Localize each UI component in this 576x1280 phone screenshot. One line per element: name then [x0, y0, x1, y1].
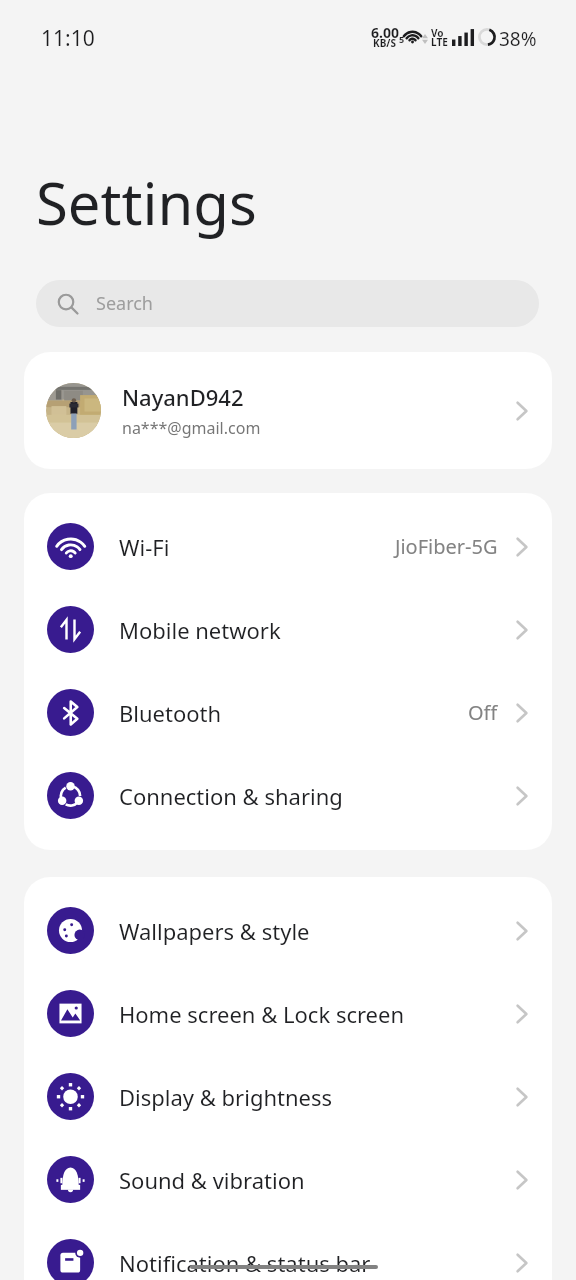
button[interactable]: Home screen & Lock screen [24, 972, 552, 1055]
staticText: KB/S [373, 36, 396, 50]
staticText: Settings [36, 163, 257, 242]
button[interactable]: NayanD942 account [24, 352, 552, 469]
staticText: Connection & sharing [119, 781, 343, 811]
staticText: Wallpapers & style [119, 916, 310, 946]
button[interactable]: Sound & vibration [24, 1138, 552, 1221]
staticText: 38% [499, 26, 537, 52]
staticText: 5 [399, 33, 405, 45]
staticText: LTE [431, 35, 448, 49]
button[interactable]: Search settings [36, 280, 539, 327]
button[interactable]: Wi-Fi [24, 505, 552, 588]
button[interactable]: Display & brightness [24, 1055, 552, 1138]
staticText: 11:10 [41, 24, 95, 53]
staticText: Sound & vibration [119, 1165, 305, 1195]
staticText: Home screen & Lock screen [119, 999, 405, 1029]
staticText: Display & brightness [119, 1082, 333, 1112]
staticText: Search [96, 291, 153, 316]
staticText: Notification & status bar [119, 1248, 371, 1278]
staticText: Wi-Fi [119, 532, 170, 562]
staticText: Off [468, 699, 498, 726]
button[interactable]: Wallpapers & style [24, 889, 552, 972]
button[interactable]: Notification & status bar [24, 1221, 552, 1280]
staticText: Mobile network [119, 615, 281, 645]
staticText: NayanD942 [122, 382, 244, 412]
button[interactable]: Connection & sharing [24, 754, 552, 837]
staticText: na***@gmail.com [122, 417, 261, 439]
staticText: Vo [431, 26, 444, 40]
button[interactable]: Mobile network [24, 588, 552, 671]
staticText: Bluetooth [119, 698, 222, 728]
staticText: JioFiber-5G [395, 533, 498, 560]
button[interactable]: Bluetooth [24, 671, 552, 754]
staticText: 6.00 [371, 23, 399, 42]
